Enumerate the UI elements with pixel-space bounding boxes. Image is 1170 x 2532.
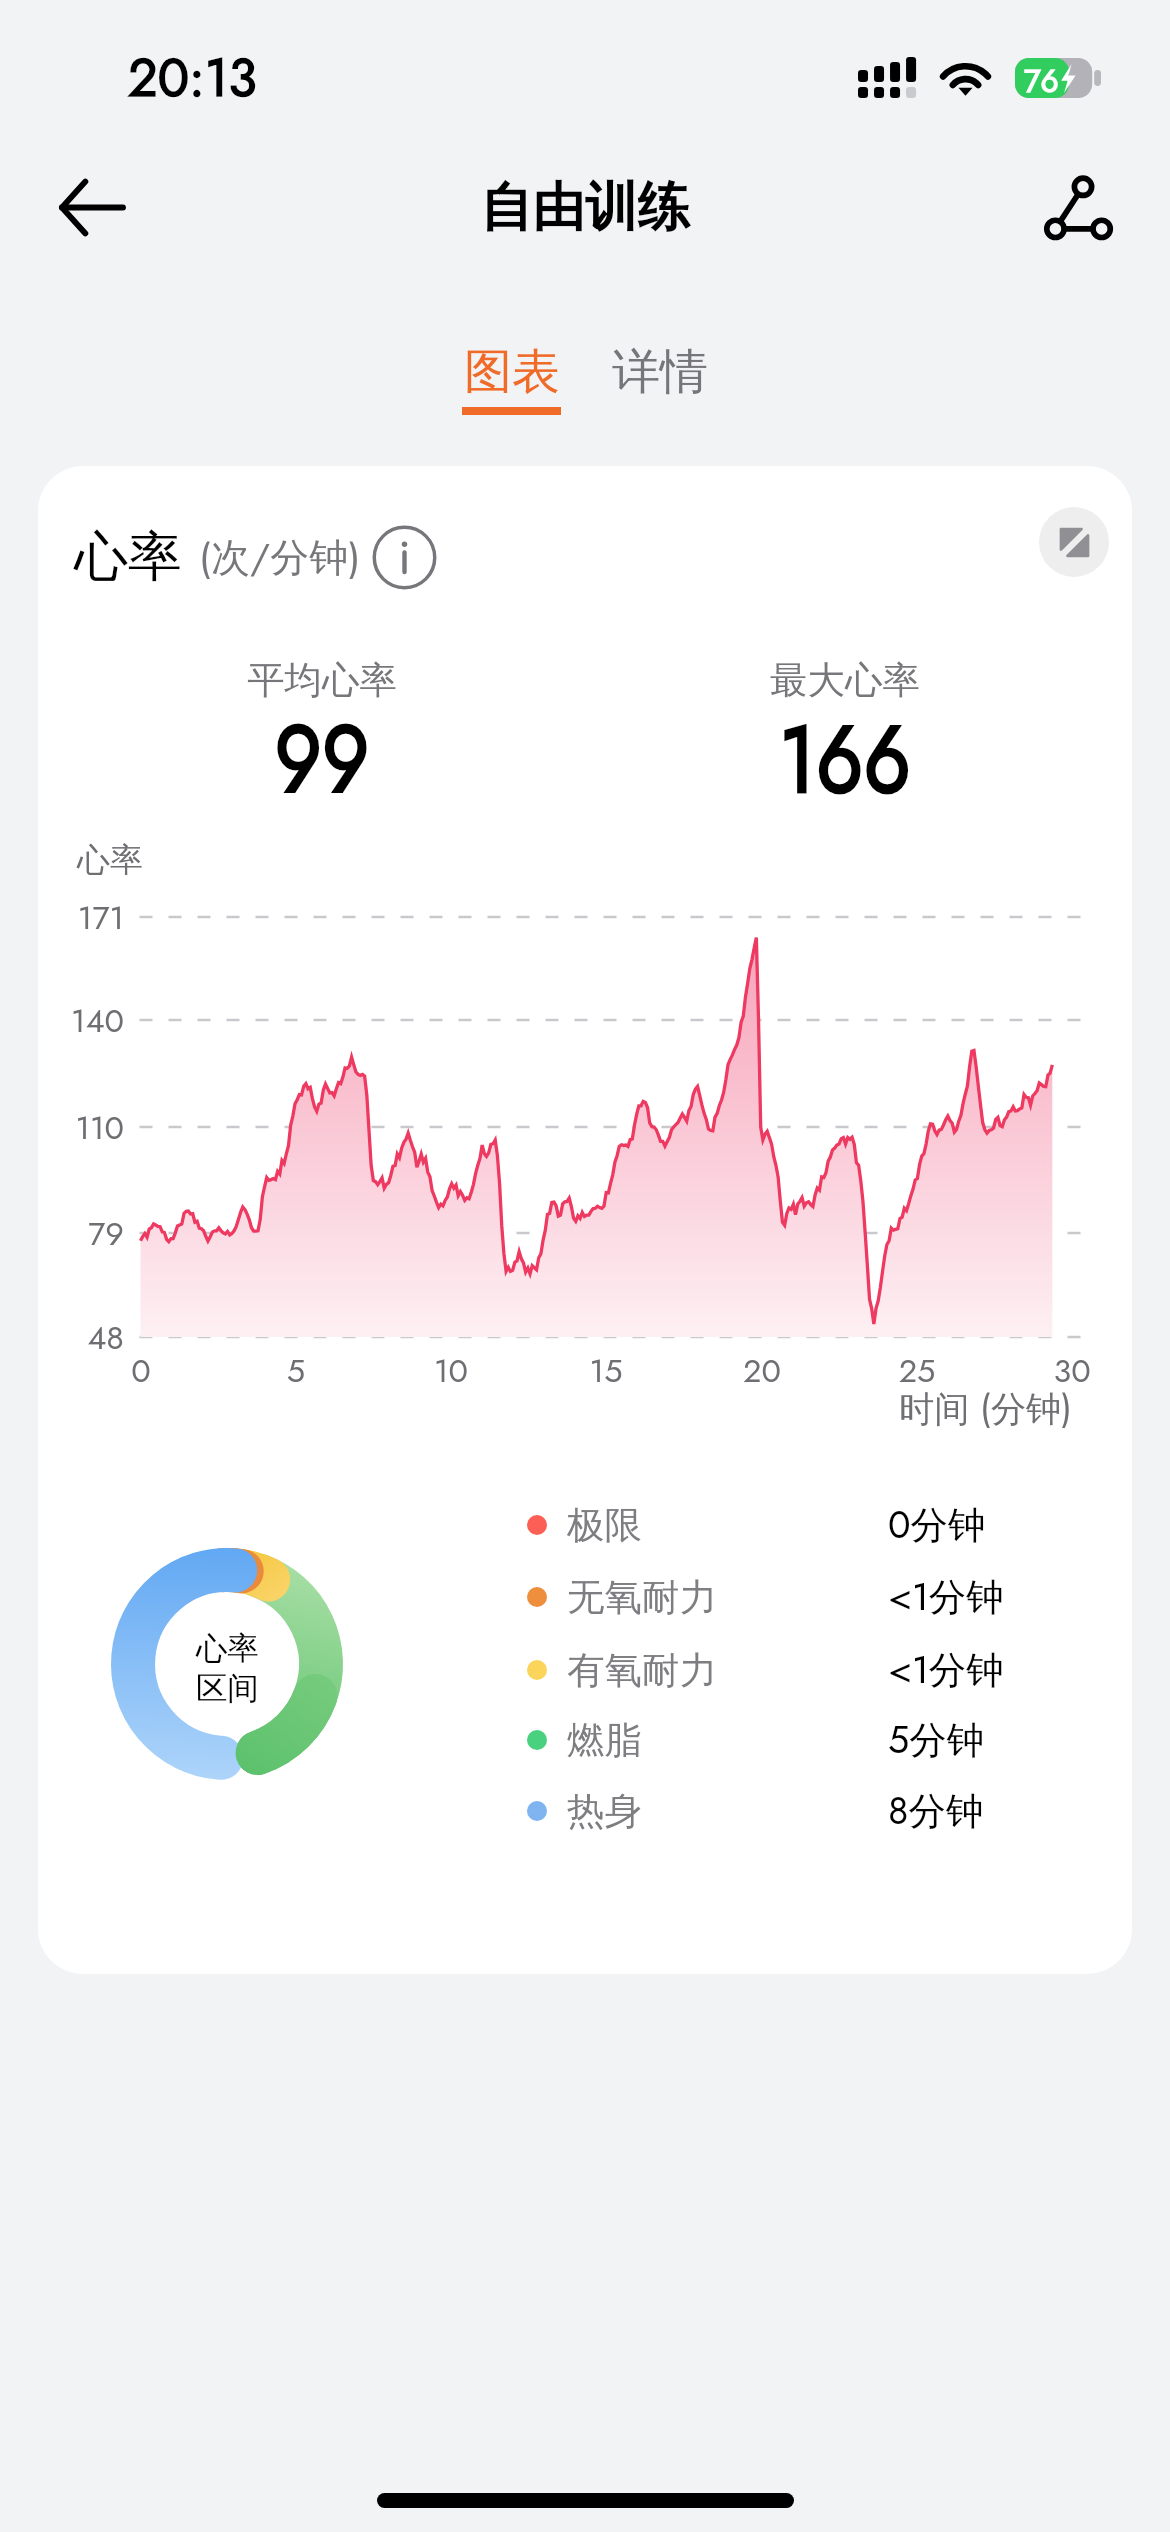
staticText: 图表 bbox=[464, 342, 560, 402]
staticText: 心率 bbox=[77, 839, 143, 881]
staticText: 20:13 bbox=[128, 40, 257, 115]
staticText: <1分钟 bbox=[888, 1570, 1004, 1624]
staticText: 平均心率 bbox=[142, 657, 502, 704]
staticText: 25 bbox=[857, 1347, 977, 1394]
staticText: 76 bbox=[1024, 58, 1059, 98]
staticText: 110 bbox=[38, 1104, 124, 1151]
button[interactable]: Info bbox=[373, 526, 436, 589]
staticText: 最大心率 bbox=[665, 657, 1025, 704]
button[interactable]: 无氧耐力 bbox=[38, 1561, 1132, 1633]
staticText: 79 bbox=[38, 1210, 124, 1257]
button[interactable]: 热身 bbox=[38, 1775, 1132, 1847]
staticText: 热身 bbox=[567, 1788, 642, 1835]
button[interactable]: Expand bbox=[1039, 507, 1109, 577]
button[interactable]: Share bbox=[1008, 138, 1146, 276]
staticText: 区间 bbox=[196, 1669, 259, 1709]
button[interactable]: 有氧耐力 bbox=[38, 1634, 1132, 1706]
staticText: 0分钟 bbox=[888, 1498, 986, 1552]
staticText: 30 bbox=[1012, 1347, 1132, 1394]
staticText: 15 bbox=[546, 1347, 666, 1394]
staticText: 166 bbox=[686, 692, 1004, 826]
staticText: 5分钟 bbox=[888, 1713, 985, 1767]
staticText: 心率 bbox=[74, 523, 182, 591]
staticText: 无氧耐力 bbox=[567, 1574, 717, 1621]
staticText: 极限 bbox=[567, 1502, 642, 1549]
staticText: 20 bbox=[702, 1347, 822, 1394]
staticText: 171 bbox=[38, 894, 124, 941]
staticText: 5 bbox=[236, 1347, 356, 1394]
staticText: 有氧耐力 bbox=[567, 1647, 717, 1694]
staticText: 自由训练 bbox=[480, 174, 690, 240]
staticText: 48 bbox=[38, 1314, 124, 1361]
staticText: 燃脂 bbox=[567, 1717, 642, 1764]
button[interactable]: 图表 bbox=[462, 342, 561, 415]
button[interactable]: Back bbox=[23, 138, 161, 276]
staticText: 99 bbox=[163, 692, 481, 826]
button[interactable]: 极限 bbox=[38, 1489, 1132, 1561]
staticText: 详情 bbox=[612, 342, 708, 402]
button[interactable]: 燃脂 bbox=[38, 1704, 1132, 1776]
staticText: 0 bbox=[81, 1347, 201, 1394]
staticText: 时间 (分钟) bbox=[38, 1383, 1072, 1434]
staticText: 10 bbox=[391, 1347, 511, 1394]
staticText: (次/分钟) bbox=[199, 529, 361, 585]
staticText: 140 bbox=[38, 997, 124, 1044]
staticText: 8分钟 bbox=[888, 1784, 984, 1838]
button[interactable]: 详情 bbox=[612, 342, 708, 402]
staticText: <1分钟 bbox=[888, 1643, 1004, 1697]
staticText: 心率 bbox=[196, 1629, 259, 1669]
